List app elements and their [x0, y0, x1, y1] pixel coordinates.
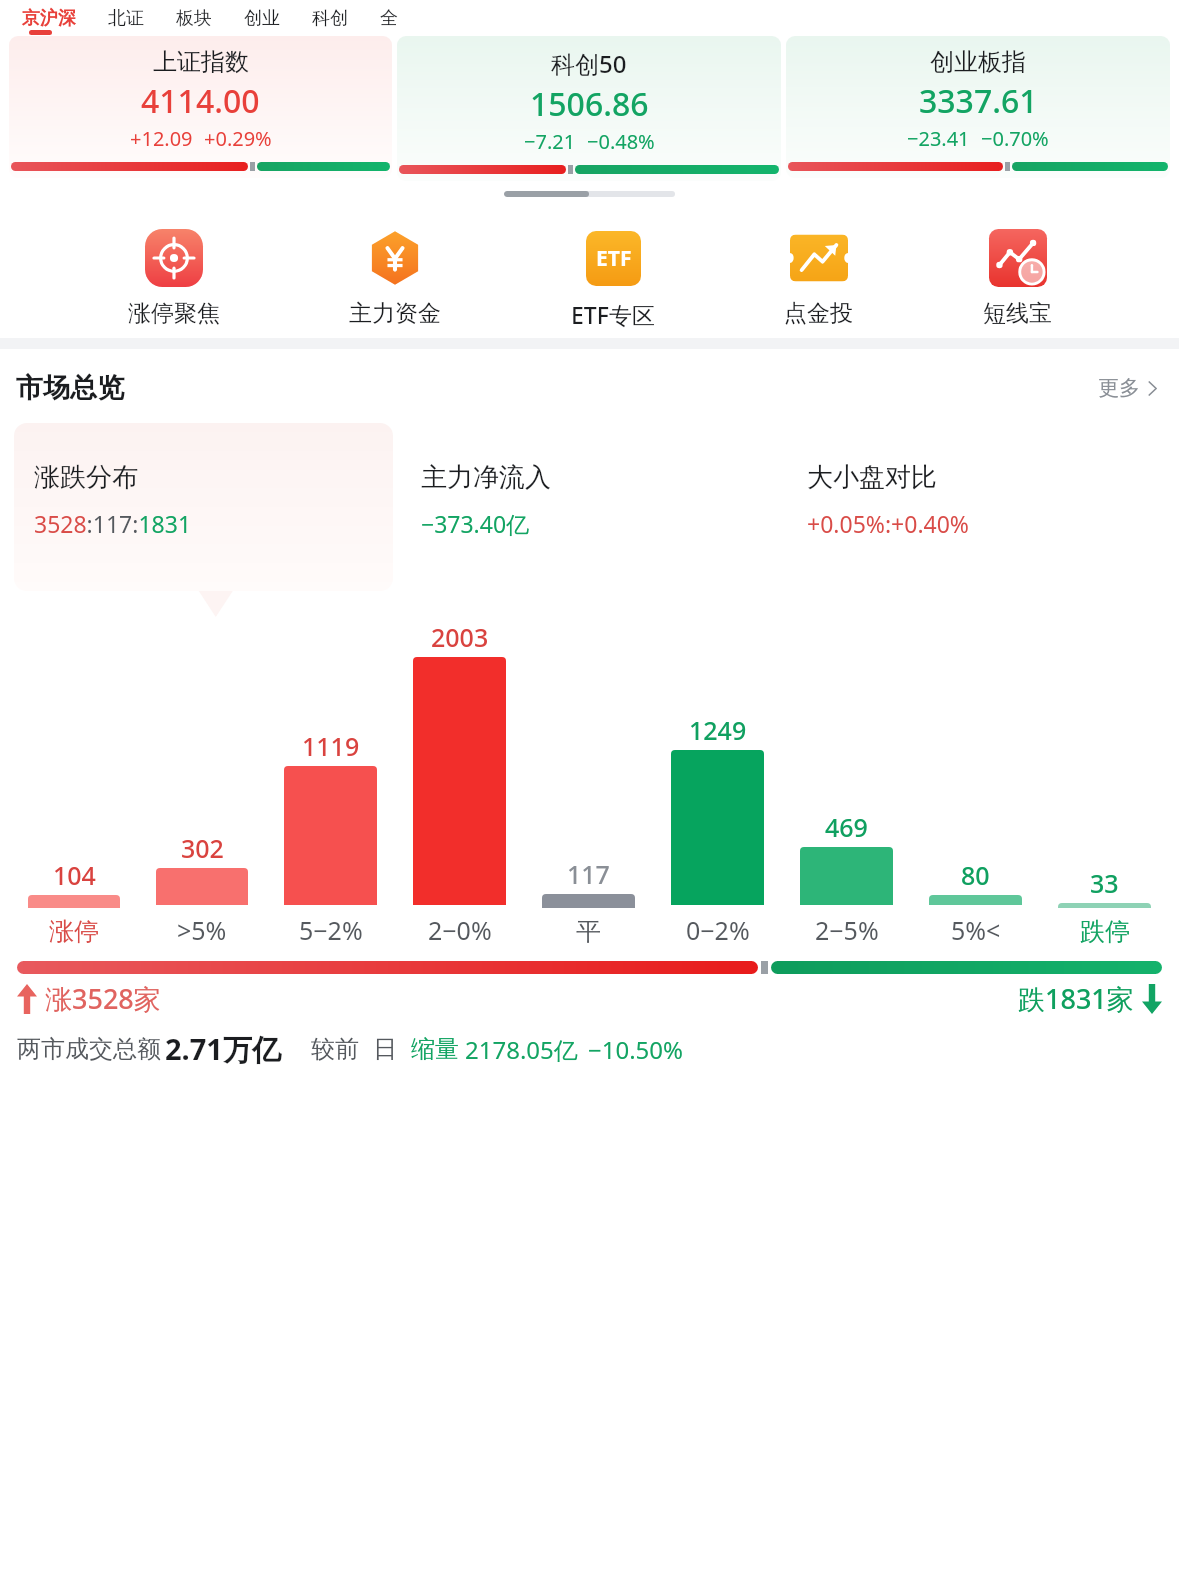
staticText: +0.29% [204, 125, 272, 152]
staticText: 4114.00 [141, 79, 260, 123]
staticText: 市场总览 [16, 371, 124, 405]
staticText: 日 [373, 1034, 397, 1064]
button[interactable]: 涨停聚焦 [122, 227, 226, 328]
staticText: 2003 [431, 620, 489, 654]
staticText: 涨3528家 [45, 980, 161, 1017]
staticText: 北证 [108, 7, 144, 30]
staticText: 涨跌分布 [34, 461, 138, 494]
button[interactable]: 主力净流入 [401, 423, 779, 591]
staticText: −0.48% [587, 128, 655, 155]
staticText: 更多 [1098, 375, 1140, 401]
staticText: 主力净流入 [421, 461, 551, 494]
staticText: 点金投 [784, 299, 853, 328]
staticText: 主力资金 [349, 299, 441, 328]
button[interactable]: 上证指数 [9, 36, 392, 178]
staticText: 京沪深 [22, 7, 76, 30]
staticText: 跌1831家 [1018, 980, 1134, 1017]
staticText: 1506.86 [530, 82, 649, 126]
staticText: 2−5% [815, 913, 879, 947]
staticText: 117 [567, 857, 610, 891]
button[interactable]: 创业 [233, 7, 291, 30]
staticText: 缩量 [411, 1034, 459, 1064]
staticText: 2−0% [428, 913, 492, 947]
button[interactable]: 点金投 [778, 227, 859, 328]
staticText: 469 [825, 810, 868, 844]
staticText: 2178.05亿 [465, 1033, 578, 1066]
staticText: 创业板指 [930, 47, 1026, 77]
staticText: 涨停 [49, 916, 99, 947]
staticText: >5% [177, 913, 227, 947]
staticText: −23.41 [907, 125, 970, 152]
button[interactable]: 创业板指 [786, 36, 1170, 178]
staticText: −10.50% [588, 1033, 684, 1066]
staticText: 2.71万亿 [165, 1029, 281, 1069]
button[interactable]: 短线宝 [977, 227, 1058, 328]
staticText: 较前 [311, 1034, 359, 1064]
staticText: +12.09 [130, 125, 193, 152]
staticText: ETF [596, 244, 632, 273]
staticText: 33 [1090, 866, 1119, 900]
button[interactable]: 京沪深 [11, 7, 87, 30]
staticText: 两市成交总额 [17, 1034, 161, 1064]
button[interactable]: 主力资金 [343, 227, 447, 328]
staticText: 1249 [689, 713, 747, 747]
staticText: 板块 [176, 7, 212, 30]
button[interactable]: 涨跌分布 [14, 423, 393, 591]
staticText: 5%< [951, 913, 1001, 947]
staticText: 涨停聚焦 [128, 299, 220, 328]
staticText: 0−2% [686, 913, 750, 947]
staticText: 全 [380, 7, 398, 30]
button[interactable]: 大小盘对比 [787, 423, 1165, 591]
button[interactable]: ETF [565, 227, 661, 330]
staticText: −0.70% [981, 125, 1049, 152]
staticText: 104 [53, 858, 96, 892]
button[interactable]: 北证 [97, 7, 155, 30]
staticText: 短线宝 [983, 299, 1052, 328]
staticText: 跌停 [1080, 916, 1130, 947]
staticText: 1119 [302, 729, 360, 763]
staticText: 3528:117:1831 [34, 508, 192, 539]
staticText: 80 [961, 858, 990, 892]
staticText: 创业 [244, 7, 280, 30]
button[interactable]: 板块 [165, 7, 223, 30]
staticText: 302 [181, 831, 224, 865]
staticText: ETF专区 [571, 299, 655, 330]
staticText: 5−2% [299, 913, 363, 947]
staticText: 大小盘对比 [807, 461, 937, 494]
staticText: 3337.61 [919, 79, 1038, 123]
button[interactable]: 全 [369, 7, 409, 30]
staticText: 科创50 [551, 47, 627, 80]
staticText: 上证指数 [153, 47, 249, 77]
button[interactable]: 科创50 [397, 36, 781, 181]
staticText: +0.05%:+0.40% [807, 508, 969, 539]
button[interactable]: 科创 [301, 7, 359, 30]
staticText: 平 [576, 916, 601, 947]
button[interactable]: 更多 [1094, 371, 1163, 405]
staticText: −373.40亿 [421, 508, 530, 539]
staticText: 科创 [312, 7, 348, 30]
staticText: −7.21 [524, 128, 576, 155]
